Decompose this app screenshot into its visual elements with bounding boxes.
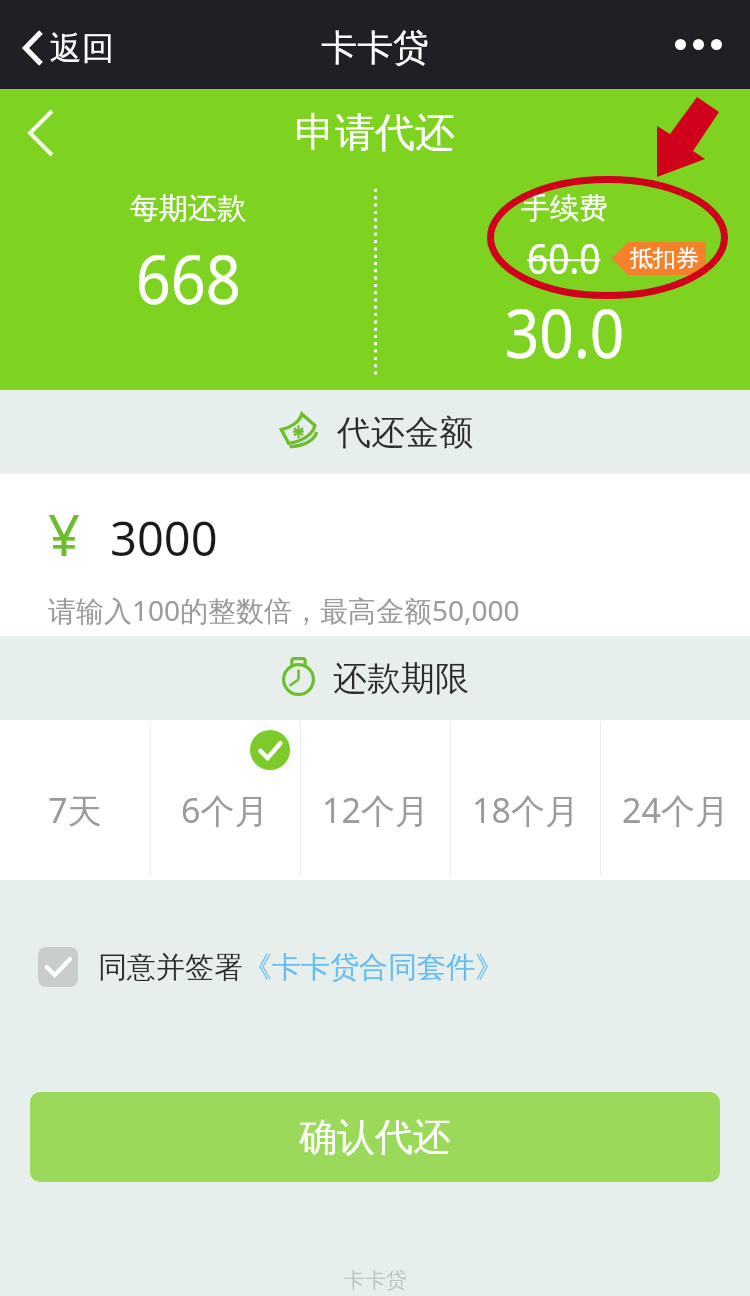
staticText: 抵扣券 [630, 244, 699, 273]
staticText: 30.0 [505, 286, 624, 377]
staticText: 18个月 [472, 787, 579, 833]
staticText: 24个月 [622, 787, 729, 833]
button[interactable]: 同意并签署 [38, 947, 750, 987]
staticText: 6个月 [181, 787, 269, 833]
staticText: ¥ [48, 496, 81, 572]
staticText: 卡卡贷 [344, 1267, 407, 1293]
staticText: 返回 [50, 28, 114, 68]
staticText: 每期还款 [130, 190, 246, 227]
staticText: 还款期限 [333, 657, 469, 700]
staticText: 12个月 [322, 787, 429, 833]
button[interactable]: More options [665, 29, 732, 60]
button[interactable]: 确认代还 [30, 1092, 720, 1182]
staticText: 卡卡贷 [321, 25, 429, 70]
button[interactable]: 6个月 [150, 720, 300, 880]
staticText: 代还金额 [337, 411, 473, 454]
staticText: 请输入100的整数倍，最高金额50,000 [48, 591, 520, 629]
staticText: 确认代还 [299, 1113, 451, 1161]
staticText: 668 [136, 231, 241, 324]
staticText: 同意并签署 [98, 949, 243, 986]
staticText: 《卡卡贷合同套件》 [243, 949, 504, 986]
button[interactable]: Back [18, 101, 64, 163]
button[interactable]: 12个月 [300, 720, 450, 880]
button[interactable]: 24个月 [600, 720, 750, 880]
staticText: 3000 [110, 506, 218, 570]
staticText: 申请代还 [295, 107, 455, 157]
button[interactable]: 7天 [0, 720, 150, 880]
button[interactable]: 返回 [14, 22, 122, 74]
staticText: 7天 [48, 787, 102, 833]
staticText: 60.0 [527, 229, 601, 286]
staticText: 手续费 [521, 190, 608, 227]
button[interactable]: 18个月 [450, 720, 600, 880]
